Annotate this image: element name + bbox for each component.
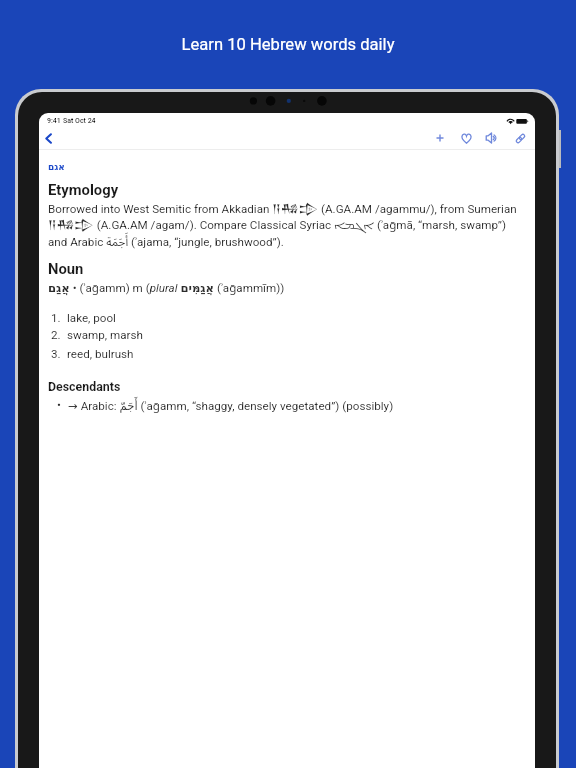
staticText: Learn 10 Hebrew words daily xyxy=(0,35,576,54)
staticText: 2. xyxy=(51,328,61,342)
button[interactable]: Back xyxy=(39,127,59,149)
button[interactable]: Pronounce xyxy=(479,127,505,149)
staticText: lake, pool xyxy=(67,311,116,325)
staticText: אגם xyxy=(48,162,65,172)
staticText: 9:41 xyxy=(47,117,61,125)
staticText: Etymology xyxy=(48,181,119,198)
button[interactable]: Add to list xyxy=(427,127,453,149)
staticText: reed, bulrush xyxy=(67,347,134,361)
button[interactable]: Copy link xyxy=(507,127,533,149)
staticText: אֲגַם • (ʾaḡamm) m (plural אֲגַמִּים (ʾa… xyxy=(48,280,519,296)
staticText: Borrowed into West Semitic from Akkadian… xyxy=(48,194,519,255)
staticText: 1. xyxy=(51,311,61,325)
button[interactable]: Favorite xyxy=(453,127,479,149)
staticText: Descendants xyxy=(48,379,121,394)
staticText: • xyxy=(57,398,61,412)
staticText: Noun xyxy=(48,260,84,277)
staticText: → Arabic: أَجَمّ (ʾaḡamm, “shaggy, dense… xyxy=(68,398,394,414)
staticText: 3. xyxy=(51,347,61,361)
staticText: swamp, marsh xyxy=(67,328,143,342)
staticText: Sat Oct 24 xyxy=(63,117,96,125)
